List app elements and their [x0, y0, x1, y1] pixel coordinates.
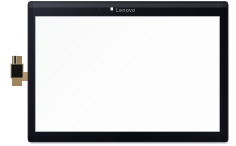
button[interactable]: Tablet digitizer glass, front view — [0, 0, 236, 146]
button[interactable]: Lenovo tablet touch screen digitizer pan… — [0, 0, 236, 146]
